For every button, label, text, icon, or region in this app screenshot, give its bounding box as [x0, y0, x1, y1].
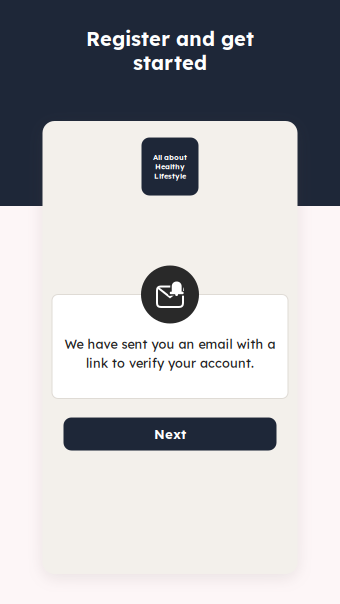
staticText: We have sent you an email with a: [64, 336, 275, 352]
staticText: started: [133, 50, 207, 75]
staticText: Lifestyle: [154, 171, 186, 180]
button[interactable]: Next: [63, 417, 276, 450]
staticText: Healthy: [155, 162, 185, 171]
staticText: link to verify your account.: [86, 355, 254, 371]
staticText: Next: [154, 426, 186, 442]
staticText: Register and get: [86, 26, 254, 51]
staticText: All about: [153, 152, 187, 162]
